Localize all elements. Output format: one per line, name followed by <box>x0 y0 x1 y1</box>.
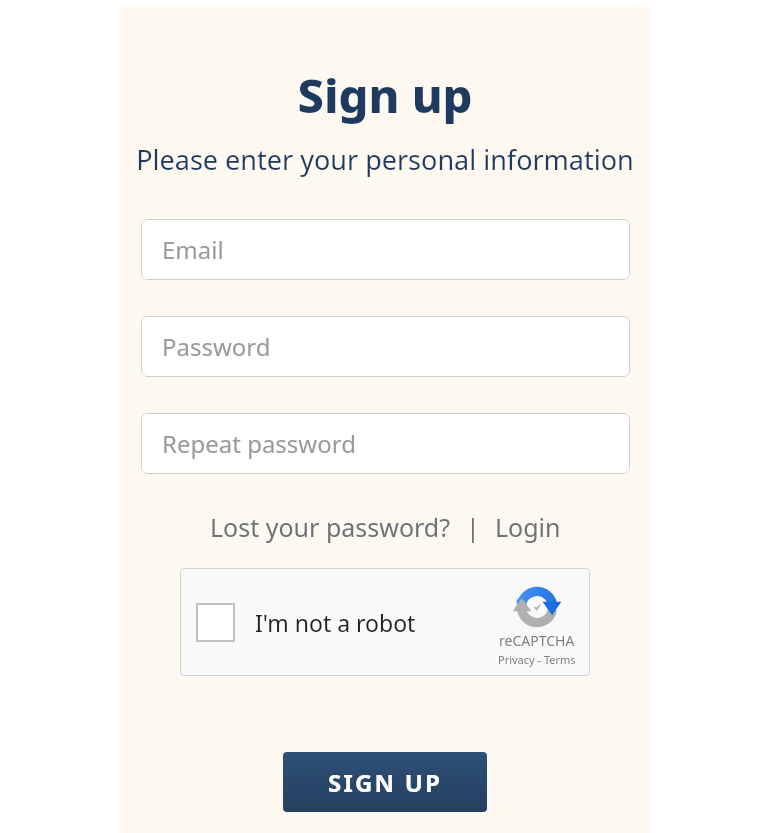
staticText: Privacy - Terms <box>498 652 576 667</box>
staticText: Please enter your personal information <box>136 141 634 178</box>
staticText: Login <box>495 510 561 544</box>
staticText: | <box>453 510 493 544</box>
staticText: Sign up <box>297 63 473 127</box>
button[interactable]: Lost your password? <box>208 506 453 548</box>
staticText: I'm not a robot <box>255 607 416 638</box>
button[interactable]: Repeat password <box>141 413 630 474</box>
staticText: Email <box>162 233 224 266</box>
button[interactable]: Password <box>141 316 630 377</box>
button[interactable]: I'm not a robot checkbox <box>196 603 235 642</box>
staticText: reCAPTCHA <box>499 631 575 650</box>
staticText: Lost your password? <box>210 510 451 544</box>
staticText: Repeat password <box>162 427 356 460</box>
button[interactable]: SIGN UP <box>283 752 487 812</box>
staticText: SIGN UP <box>328 766 443 799</box>
staticText: Password <box>162 330 271 363</box>
button[interactable]: Login <box>493 506 563 548</box>
button[interactable]: Email <box>141 219 630 280</box>
